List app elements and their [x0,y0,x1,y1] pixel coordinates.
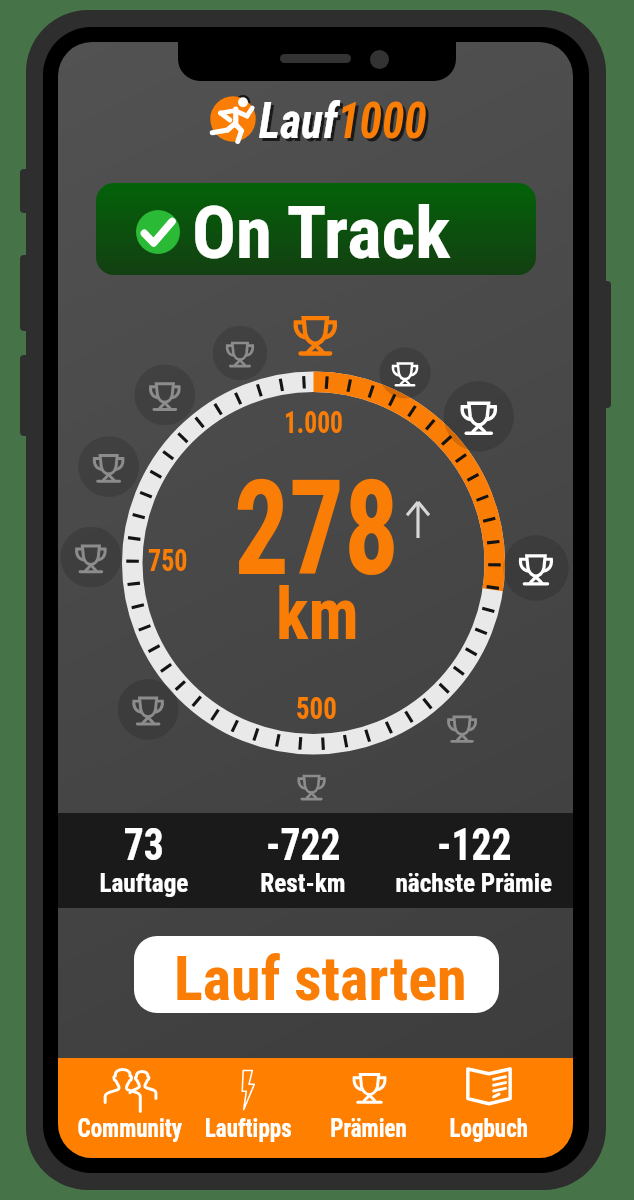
staticText: Lauf starten [174,942,467,1013]
button[interactable]: On Track [96,183,536,275]
staticText: -122 [437,818,512,871]
staticText: Rest-km [260,868,346,898]
staticText: Logbuch [449,1114,528,1143]
button[interactable]: Prämien [305,1058,433,1158]
staticText: On Track [192,190,451,275]
button[interactable]: 73 [59,813,229,908]
button[interactable]: -722 [218,813,388,908]
staticText: 1000 [337,92,427,151]
staticText: Community [78,1114,182,1143]
staticText: 278 [234,452,399,606]
staticText: km [276,572,359,656]
button[interactable]: Lauftipps [184,1058,312,1158]
button[interactable]: Community [66,1058,194,1158]
staticText: 73 [124,818,164,871]
staticText: Lauftage [99,868,189,898]
staticText: 1000 [340,95,430,154]
staticText: Lauf [259,92,337,151]
button[interactable]: -122 [389,813,559,908]
staticText: Lauftipps [205,1114,292,1143]
staticText: 1.000 [284,404,343,440]
staticText: 750 [148,542,188,578]
staticText: Prämien [330,1114,408,1143]
button[interactable]: Logbuch [425,1058,553,1158]
staticText: -722 [266,818,341,871]
staticText: Lauf [262,95,340,154]
staticText: 500 [296,689,337,727]
button[interactable]: Lauf starten [134,936,499,1013]
staticText: nächste Prämie [395,868,552,898]
